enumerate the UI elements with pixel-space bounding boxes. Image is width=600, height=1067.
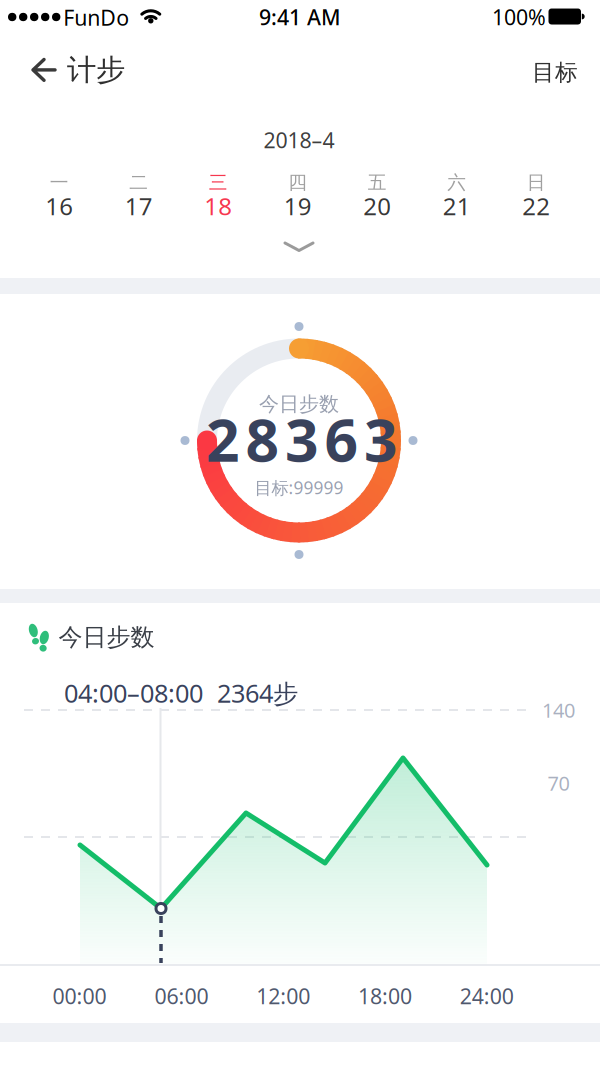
button[interactable]: 五 [338,165,417,223]
staticText: 18 [204,190,232,222]
button[interactable]: 一 [19,165,99,223]
staticText: 20 [363,190,391,222]
staticText: 12:00 [256,982,310,1010]
button[interactable]: 三 [179,165,258,223]
staticText: 18:00 [358,982,412,1010]
staticText: 今日步数 [259,392,339,416]
staticText: 00:00 [53,982,107,1010]
staticText: 16 [45,190,73,222]
button[interactable]: 目标 [524,51,586,94]
staticText: 三 [209,171,228,194]
staticText: 100% [492,3,546,31]
button[interactable]: 二 [99,165,179,223]
staticText: 日 [527,171,546,194]
button[interactable]: 四 [258,165,338,223]
staticText: 六 [447,171,466,194]
staticText: 28363 [206,400,398,478]
staticText: 计步 [67,52,125,88]
staticText: 今日步数 [58,623,154,652]
staticText: 140 [542,697,575,723]
staticText: 二 [129,171,148,194]
staticText: 2018–4 [263,126,334,154]
staticText: 目标 [532,59,578,86]
staticText: 19 [284,190,312,222]
staticText: 目标:99999 [254,476,343,499]
staticText: 06:00 [154,982,208,1010]
staticText: 17 [125,190,153,222]
staticText: 24:00 [460,982,514,1010]
staticText: 70 [548,770,570,796]
staticText: 一 [50,171,69,194]
staticText: 21 [443,190,471,222]
button[interactable] [273,231,325,263]
button[interactable]: 日 [496,165,576,223]
staticText: 五 [368,171,387,194]
button[interactable]: 六 [417,165,497,223]
staticText: 四 [288,171,307,194]
button[interactable]: 计步 [31,52,125,88]
staticText: 04:00–08:00 2364步 [64,676,298,710]
staticText: 9:41 AM [259,3,341,31]
staticText: 22 [522,190,550,222]
staticText: FunDo [63,3,129,32]
